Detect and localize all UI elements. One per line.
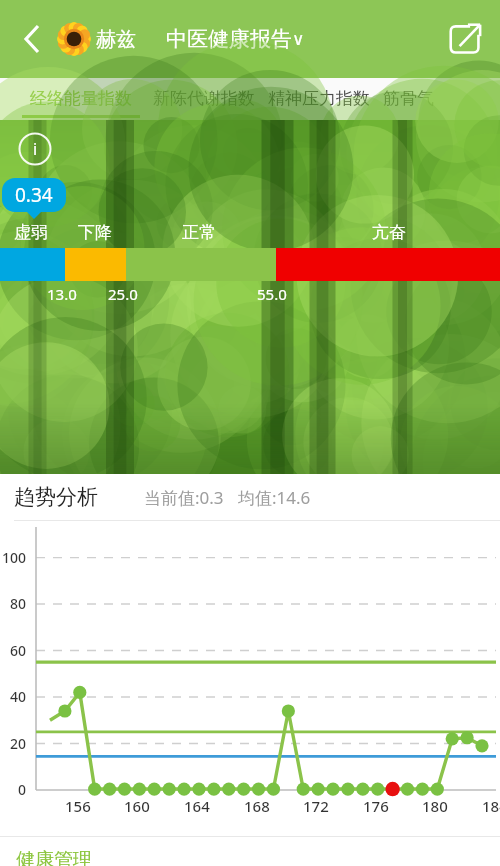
staticText: 168: [244, 796, 270, 816]
staticText: 176: [363, 796, 389, 816]
staticText: 156: [65, 796, 91, 816]
staticText: 25.0: [108, 284, 138, 304]
staticText: 虚弱: [14, 222, 48, 243]
button[interactable]: 经络能量指数: [22, 78, 140, 120]
button[interactable]: 健康管理: [16, 848, 92, 866]
button[interactable]: 赫兹: [58, 23, 136, 55]
staticText: 均值:14.6: [238, 486, 311, 509]
staticText: 0.34: [15, 182, 53, 208]
staticText: 精神压力指数: [268, 88, 370, 109]
staticText: 经络能量指数: [30, 88, 132, 109]
staticText: 55.0: [257, 284, 287, 304]
staticText: 趋势分析: [14, 484, 98, 510]
staticText: 80: [10, 594, 27, 613]
staticText: 60: [10, 641, 27, 660]
staticText: 新陈代谢指数: [153, 88, 255, 109]
staticText: 赫兹: [96, 27, 136, 52]
button[interactable]: 新陈代谢指数: [153, 78, 255, 120]
staticText: 亢奋: [372, 222, 406, 243]
button[interactable]: 中医健康报告: [166, 26, 305, 52]
button[interactable]: 精神压力指数: [268, 78, 370, 120]
staticText: 筋骨气: [383, 88, 434, 109]
staticText: 184: [482, 796, 500, 816]
staticText: 100: [2, 548, 27, 567]
staticText: 180: [422, 796, 448, 816]
button[interactable]: Back: [10, 17, 54, 61]
staticText: 0: [18, 780, 27, 799]
button[interactable]: 筋骨气: [383, 78, 434, 120]
staticText: 13.0: [47, 284, 77, 304]
button[interactable]: Share: [444, 18, 486, 60]
staticText: 正常: [182, 222, 216, 243]
staticText: 20: [10, 734, 27, 753]
staticText: 中医健康报告: [166, 26, 292, 52]
staticText: 164: [184, 796, 210, 816]
button[interactable]: Info: [18, 132, 52, 166]
staticText: i: [33, 138, 38, 160]
staticText: 当前值:0.3: [144, 486, 224, 509]
staticText: ∨: [292, 29, 305, 49]
staticText: 下降: [78, 222, 112, 243]
staticText: 160: [124, 796, 150, 816]
staticText: 172: [303, 796, 329, 816]
staticText: 40: [10, 687, 27, 706]
